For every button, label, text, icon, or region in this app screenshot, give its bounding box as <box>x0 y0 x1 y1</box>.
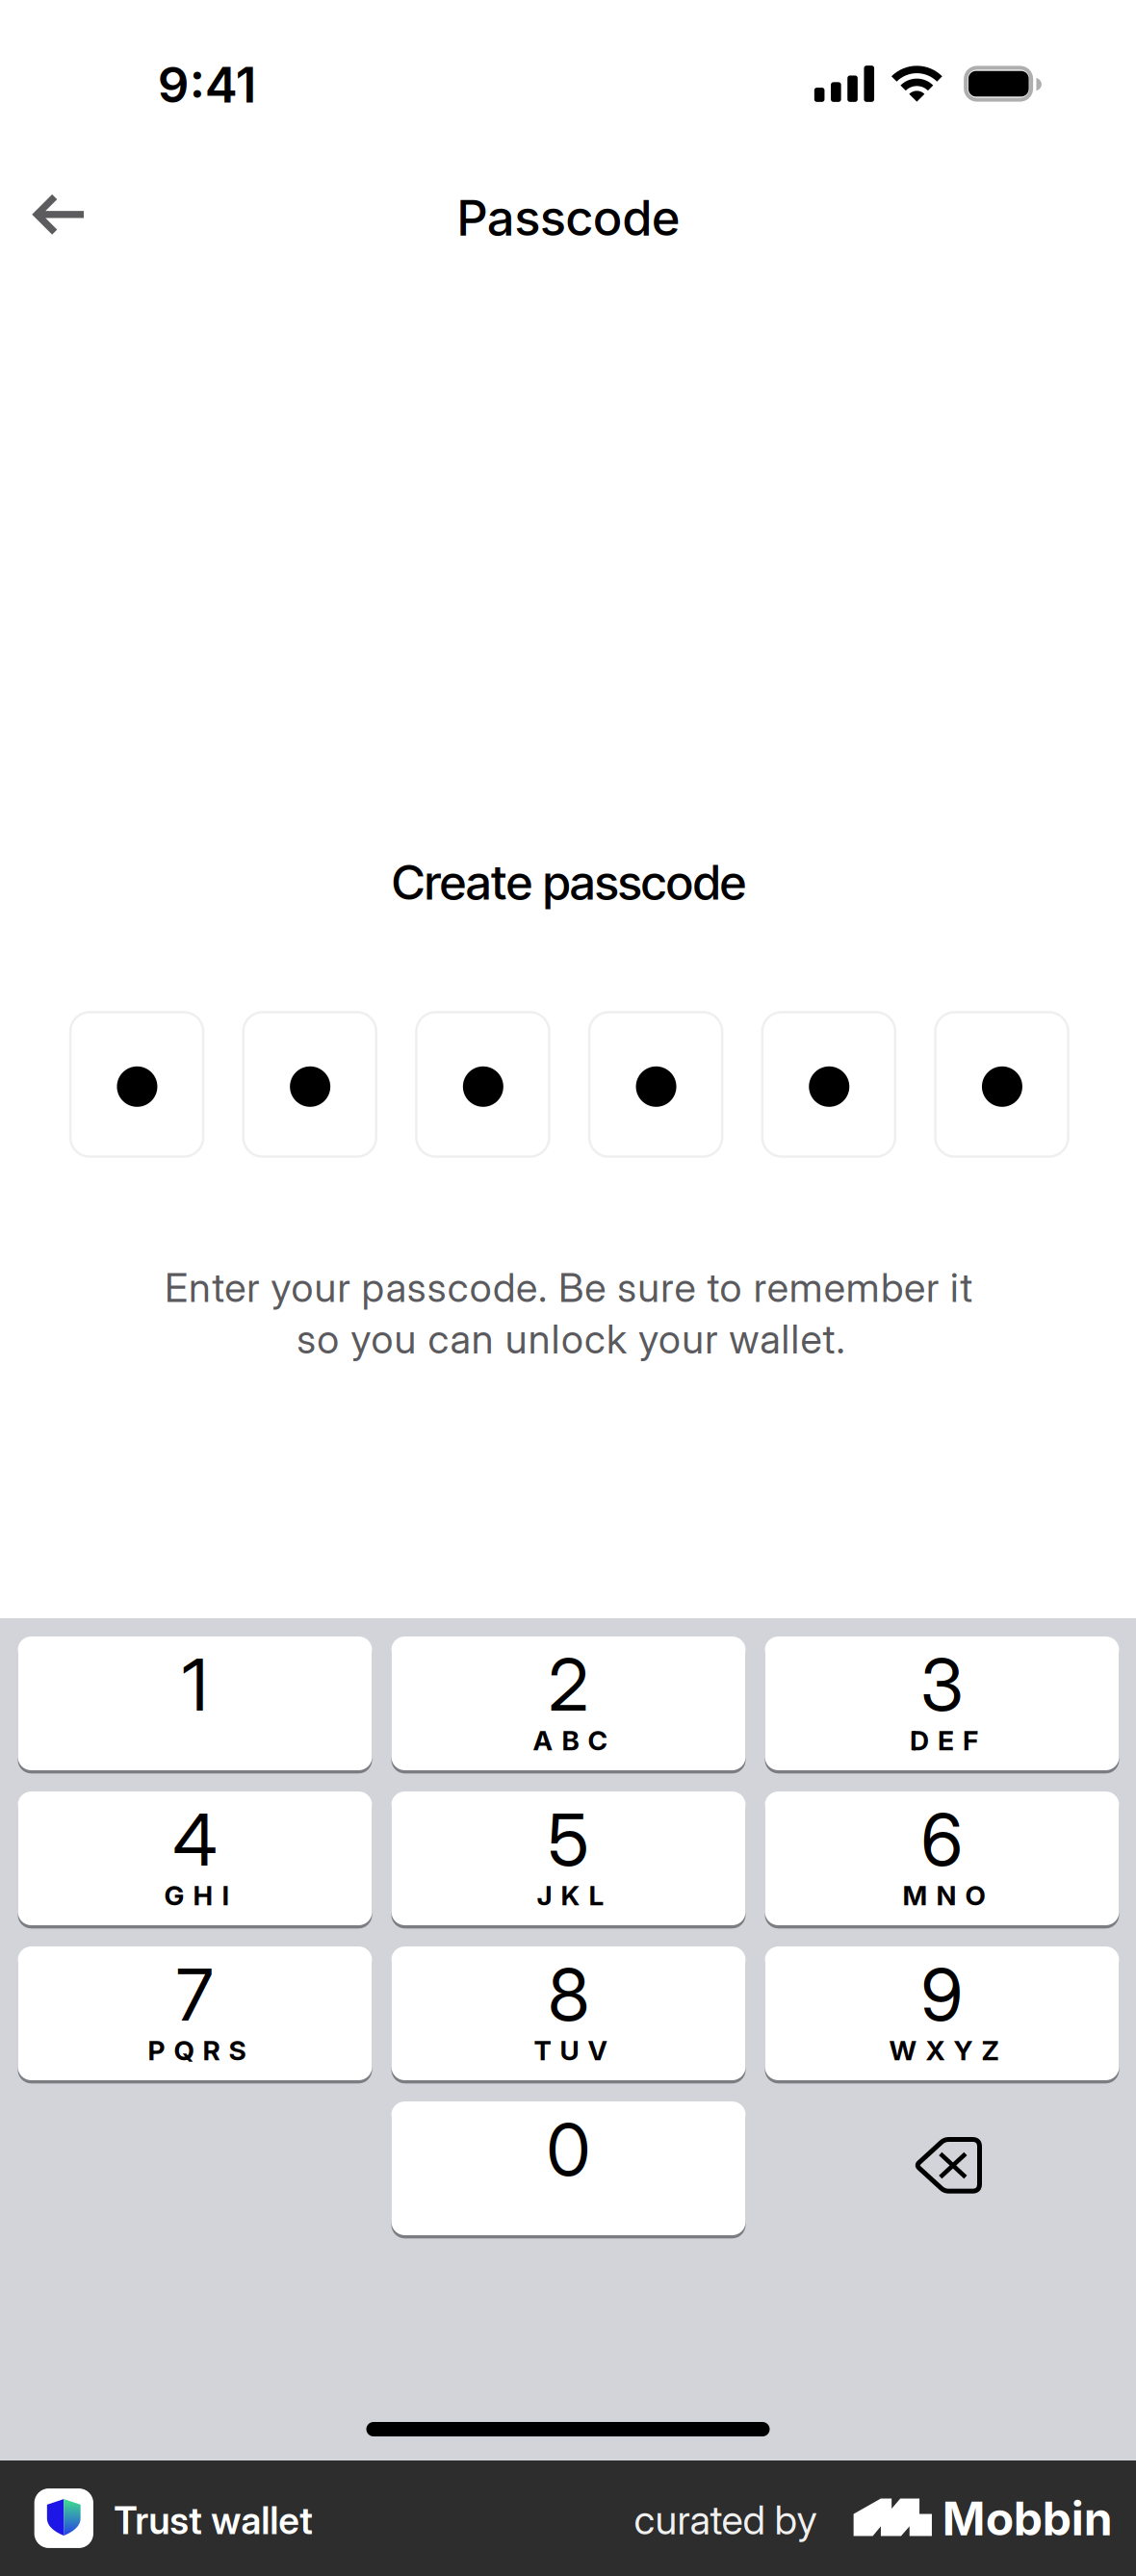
staticText: 3 <box>920 1641 964 1728</box>
staticText: Mobbin <box>942 2491 1113 2546</box>
staticText: so you can unlock your wallet. <box>297 1315 845 1363</box>
staticText: PQRS <box>148 2034 246 2067</box>
staticText: Enter your passcode. Be sure to remember… <box>165 1263 973 1311</box>
button[interactable]: 3 <box>765 1636 1119 1773</box>
button[interactable]: 8 <box>391 1946 746 2083</box>
staticText: 9:41 <box>158 55 257 114</box>
staticText: MNO <box>903 1879 985 1912</box>
staticText: 2 <box>548 1641 589 1728</box>
staticText: TUV <box>534 2034 607 2067</box>
button[interactable]: 6 <box>765 1791 1119 1928</box>
staticText: 7 <box>176 1951 214 2038</box>
button[interactable]: 5 <box>391 1791 746 1928</box>
button[interactable]: 7 <box>18 1946 372 2083</box>
staticText: GHI <box>164 1879 230 1912</box>
staticText: ABC <box>533 1724 608 1757</box>
staticText: 0 <box>546 2106 591 2193</box>
staticText: 4 <box>173 1796 217 1883</box>
staticText: DEF <box>910 1724 978 1757</box>
button[interactable]: 2 <box>391 1636 746 1773</box>
button[interactable]: 9 <box>765 1946 1119 2083</box>
button[interactable]: 0 <box>391 2101 746 2238</box>
staticText: JKL <box>537 1879 604 1912</box>
button[interactable]: Delete <box>765 2101 1119 2235</box>
staticText: Passcode <box>457 188 680 247</box>
staticText: 6 <box>921 1796 963 1883</box>
staticText: WXYZ <box>889 2034 999 2067</box>
button[interactable]: 4 <box>18 1791 372 1928</box>
staticText: 9 <box>921 1951 963 2038</box>
staticText: Create passcode <box>392 854 746 911</box>
staticText: curated by <box>634 2496 817 2544</box>
staticText: 8 <box>548 1951 589 2038</box>
button[interactable]: Back <box>1 166 115 263</box>
staticText: Trust wallet <box>114 2498 313 2543</box>
staticText: 1 <box>182 1641 208 1728</box>
button[interactable]: 1 <box>18 1636 372 1773</box>
staticText: 5 <box>548 1796 589 1883</box>
